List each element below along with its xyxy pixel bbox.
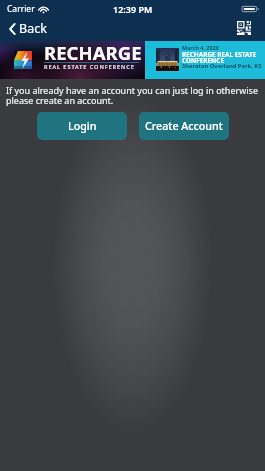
button[interactable]: RECHARGE	[0, 41, 145, 79]
staticText: Login	[68, 119, 97, 134]
staticText: REAL ESTATE CONFERENCE	[44, 63, 135, 71]
staticText: If you already have an account you can j…	[6, 84, 261, 107]
button[interactable]: Scan QR code	[234, 18, 254, 38]
button[interactable]: Login	[37, 112, 127, 140]
staticText: RECHARGE REAL ESTATE	[182, 50, 257, 59]
button[interactable]: March 4, 2020	[145, 41, 265, 79]
staticText: 12:39 PM	[113, 3, 153, 15]
staticText: Carrier	[7, 3, 35, 15]
button[interactable]: Create Account	[139, 112, 229, 140]
button[interactable]: Back	[9, 20, 47, 37]
staticText: Create Account	[145, 119, 223, 134]
staticText: Sheraton Overland Park, KS	[182, 62, 262, 70]
staticText: Back	[19, 20, 47, 37]
staticText: CONFERENCE	[182, 56, 224, 65]
staticText: RECHARGE	[44, 40, 142, 65]
staticText: March 4, 2020	[182, 44, 219, 51]
